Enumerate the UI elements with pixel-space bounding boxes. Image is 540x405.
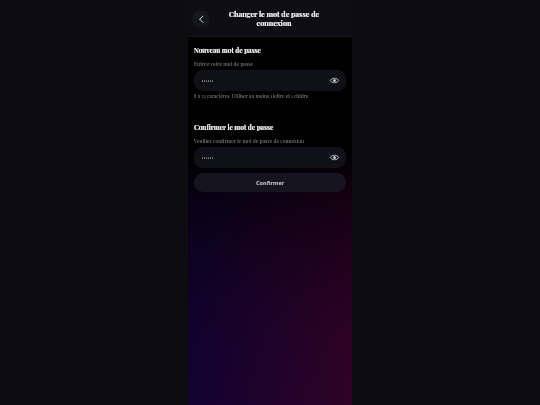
staticText: Entrez votre mot de passe (194, 60, 254, 67)
button[interactable]: Show password (194, 147, 346, 168)
button[interactable]: Show password (329, 152, 340, 163)
button[interactable]: Show password (194, 70, 346, 91)
staticText: Nouveau mot de passe (194, 46, 261, 55)
staticText: Veuillez confirmer le mot de passe de co… (194, 137, 305, 144)
staticText: 8 à 32 caractères. Utiliser au moins 1 l… (194, 93, 310, 99)
staticText: Changer le mot de passe de connexion (218, 9, 330, 28)
staticText: Confirmer le mot de passe (194, 123, 274, 132)
button[interactable]: Back (193, 11, 209, 27)
button[interactable]: Confirmer (194, 173, 346, 192)
button[interactable]: Show password (329, 75, 340, 86)
staticText: Confirmer (256, 179, 285, 187)
